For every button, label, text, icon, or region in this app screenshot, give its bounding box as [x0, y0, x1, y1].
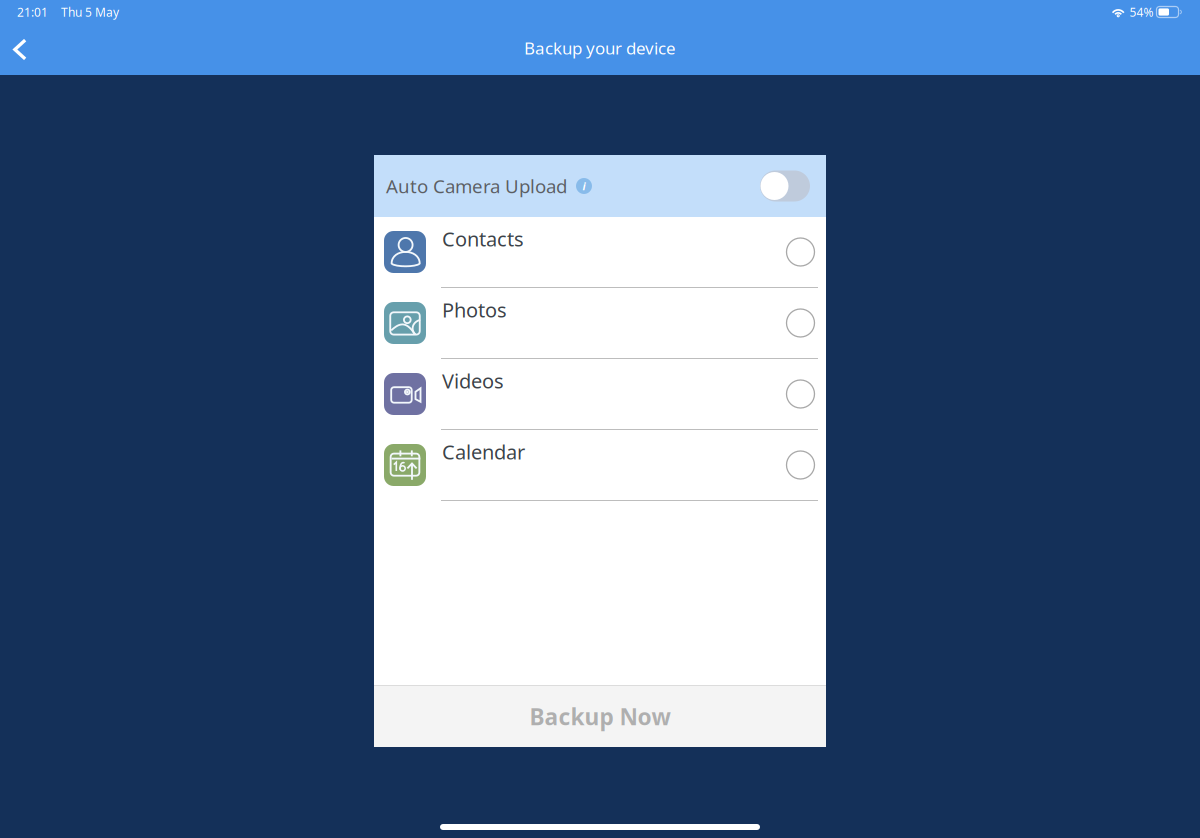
staticText: Videos: [442, 367, 504, 394]
button[interactable]: Back: [0, 27, 39, 71]
staticText: i: [582, 179, 585, 193]
staticText: Contacts: [442, 225, 524, 252]
staticText: Backup your device: [524, 36, 676, 60]
button[interactable]: Photos: [374, 288, 826, 359]
staticText: 54%: [1129, 4, 1153, 20]
button[interactable]: Contacts: [374, 217, 826, 288]
staticText: Thu 5 May: [61, 4, 119, 20]
button[interactable]: Backup Now: [374, 686, 826, 747]
staticText: Backup Now: [529, 701, 670, 732]
staticText: 21:01: [17, 4, 48, 20]
button[interactable]: Videos: [374, 359, 826, 430]
staticText: Calendar: [442, 438, 525, 465]
staticText: Photos: [442, 296, 507, 323]
staticText: Auto Camera Upload: [386, 173, 567, 199]
button[interactable]: Calendar: [374, 430, 826, 501]
button[interactable]: Auto Camera Upload: [760, 170, 810, 201]
